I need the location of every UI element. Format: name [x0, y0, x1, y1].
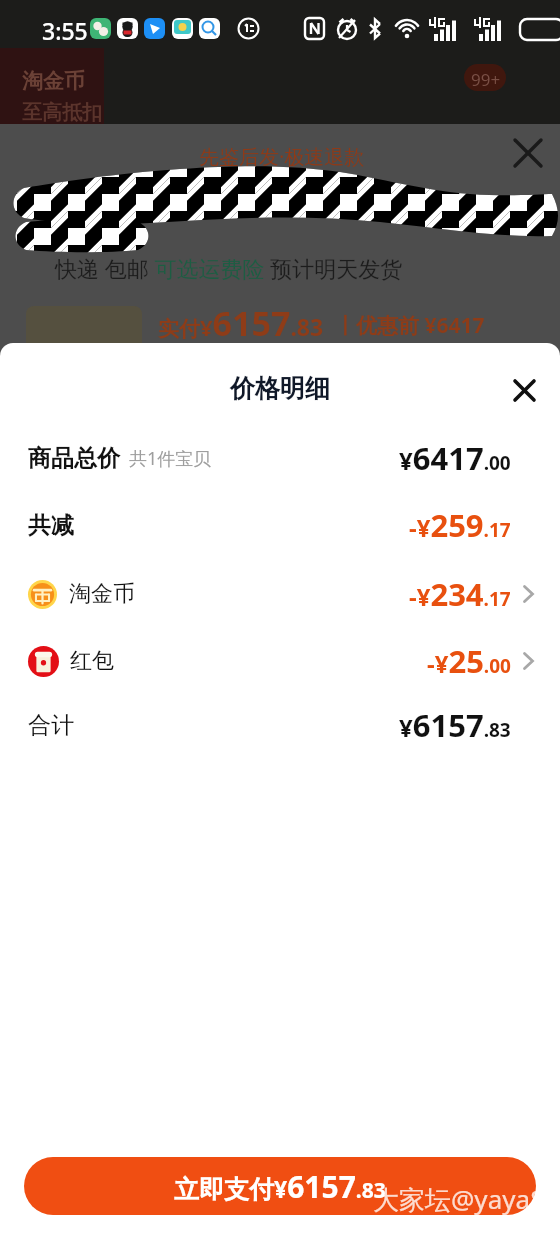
staticText: -¥25.00 [427, 640, 511, 682]
button[interactable]: 共减 [0, 501, 560, 549]
staticText: 合计 [28, 711, 74, 740]
staticText: 实付¥6157.83 [158, 300, 324, 346]
button[interactable]: 红包 [0, 637, 560, 685]
button[interactable]: 商品总价 [0, 434, 560, 482]
staticText: ¥6157.83 [399, 704, 511, 746]
staticText: 淘金币 [69, 580, 135, 608]
staticText: 大家坛@yaya888 [373, 1181, 560, 1217]
staticText: -¥259.17 [409, 504, 511, 546]
button[interactable]: Close page [506, 131, 550, 175]
staticText: ¥6417.00 [399, 437, 511, 479]
staticText: -¥234.17 [409, 573, 511, 615]
staticText: 快递 包邮 可选运费险 预计明天发货 [55, 253, 403, 283]
staticText: 先鉴后发·极速退款 [199, 143, 365, 170]
button[interactable]: 合计 [0, 701, 560, 749]
staticText: 至高抵扣 [22, 100, 102, 125]
staticText: 3:55 [42, 15, 88, 46]
button[interactable]: Close [502, 368, 546, 412]
staticText: 99+ [471, 68, 501, 91]
staticText: 价格明细 [0, 373, 560, 404]
staticText: 共1件宝贝 [129, 446, 212, 471]
staticText: 红包 [70, 647, 114, 675]
staticText: 丨优惠前 ¥6417 [335, 311, 485, 340]
button[interactable]: 立即支付¥6157.83 [24, 1157, 536, 1215]
staticText: 商品总价 [28, 444, 120, 473]
staticText: 共减 [28, 511, 74, 540]
staticText: 淘金币 [22, 68, 85, 94]
button[interactable]: 淘金币 [0, 570, 560, 618]
staticText: 立即支付¥6157.83 [174, 1166, 386, 1207]
